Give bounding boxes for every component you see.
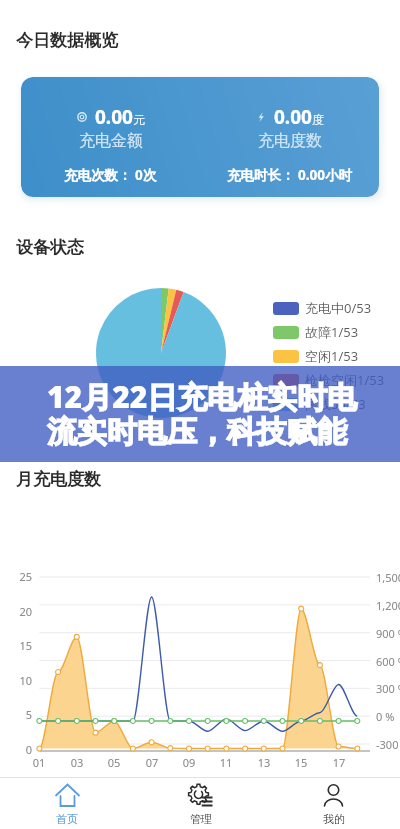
staticText: 空闲1/53 [305,347,359,365]
staticText: 10 [8,673,32,688]
staticText: 17 [327,755,351,770]
staticText: 设备状态 [16,237,84,258]
staticText: 枪枪空闲1/53 [305,371,385,389]
staticText: 元 [133,112,145,127]
staticText: 首页 [56,812,78,826]
staticText: 0.00 [274,104,312,130]
staticText: 01 [27,755,51,770]
staticText: 600 % [376,654,400,669]
button[interactable]: 0.00 [21,77,379,197]
staticText: 12月22日充电桩实时电 流实时电压，科技赋能 [47,376,358,451]
staticText: 月充电度数 [16,469,101,490]
staticText: 20 [8,604,32,619]
staticText: 充电度数 [258,131,322,151]
staticText: 15 [289,755,313,770]
staticText: 03 [65,755,89,770]
staticText: 1,500 [376,570,400,585]
button[interactable]: 我的 [267,778,400,829]
staticText: 离线50/53 [305,395,366,413]
staticText: 今日数据概览 [16,30,118,51]
staticText: 09 [177,755,201,770]
button[interactable]: 首页 [0,778,134,829]
staticText: 故障1/53 [305,323,359,341]
staticText: -300 [376,737,399,752]
staticText: 0 % [376,709,395,724]
staticText: 度 [312,112,324,127]
staticText: 充电次数： 0次 [64,166,157,184]
staticText: 07 [140,755,164,770]
staticText: 25 [8,569,32,584]
staticText: 300 % [376,681,400,696]
button[interactable]: 管理 [134,778,267,829]
staticText: 15 [8,638,32,653]
staticText: 11 [214,755,238,770]
staticText: 充电时长： 0.00小时 [227,166,352,184]
staticText: 13 [252,755,276,770]
staticText: 0.00 [95,104,133,130]
staticText: 0 [8,742,32,757]
staticText: 900 % [376,626,400,641]
staticText: 充电金额 [79,131,143,151]
staticText: 我的 [323,812,345,826]
staticText: 1,200 [376,598,400,613]
staticText: 05 [102,755,126,770]
staticText: 5 [8,707,32,722]
staticText: 管理 [190,812,212,826]
staticText: 充电中0/53 [305,299,372,317]
